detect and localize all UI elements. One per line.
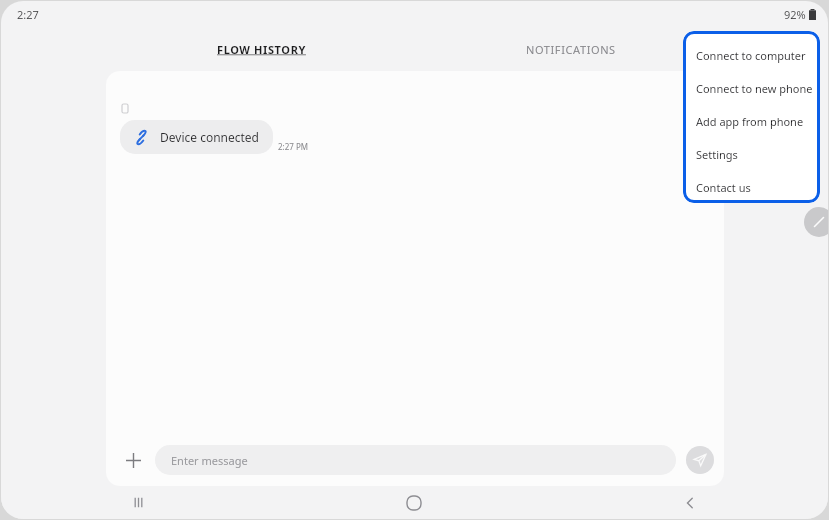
button[interactable]: NOTIFICATIONS <box>416 27 726 71</box>
staticText: Connect to new phone <box>696 81 813 96</box>
staticText: Enter message <box>171 453 248 468</box>
button[interactable]: Device connected <box>120 120 273 154</box>
staticText: Connect to computer <box>696 48 806 63</box>
button[interactable]: Home <box>276 486 552 519</box>
button[interactable]: Settings <box>683 138 820 171</box>
staticText: Settings <box>696 147 738 162</box>
button[interactable]: Back <box>552 486 828 519</box>
staticText: Contact us <box>696 180 751 195</box>
staticText: 2:27 PM <box>278 141 309 152</box>
button[interactable]: Connect to new phone <box>683 72 820 105</box>
staticText: FLOW HISTORY <box>217 42 306 57</box>
button[interactable]: Recents <box>1 486 276 519</box>
staticText: Add app from phone <box>696 114 804 129</box>
staticText: NOTIFICATIONS <box>526 42 616 57</box>
staticText: 2:27 <box>17 7 39 22</box>
staticText: Device connected <box>160 129 259 145</box>
button[interactable]: Add attachment <box>116 443 150 477</box>
button[interactable]: Enter message <box>155 445 676 475</box>
button[interactable]: Contact us <box>683 171 820 203</box>
button[interactable]: Connect to computer <box>683 39 820 72</box>
button[interactable]: Add app from phone <box>683 105 820 138</box>
button[interactable]: Compose <box>804 207 828 237</box>
staticText: 92% <box>784 7 806 22</box>
button[interactable]: Send <box>686 446 714 474</box>
button[interactable]: FLOW HISTORY <box>106 27 416 71</box>
